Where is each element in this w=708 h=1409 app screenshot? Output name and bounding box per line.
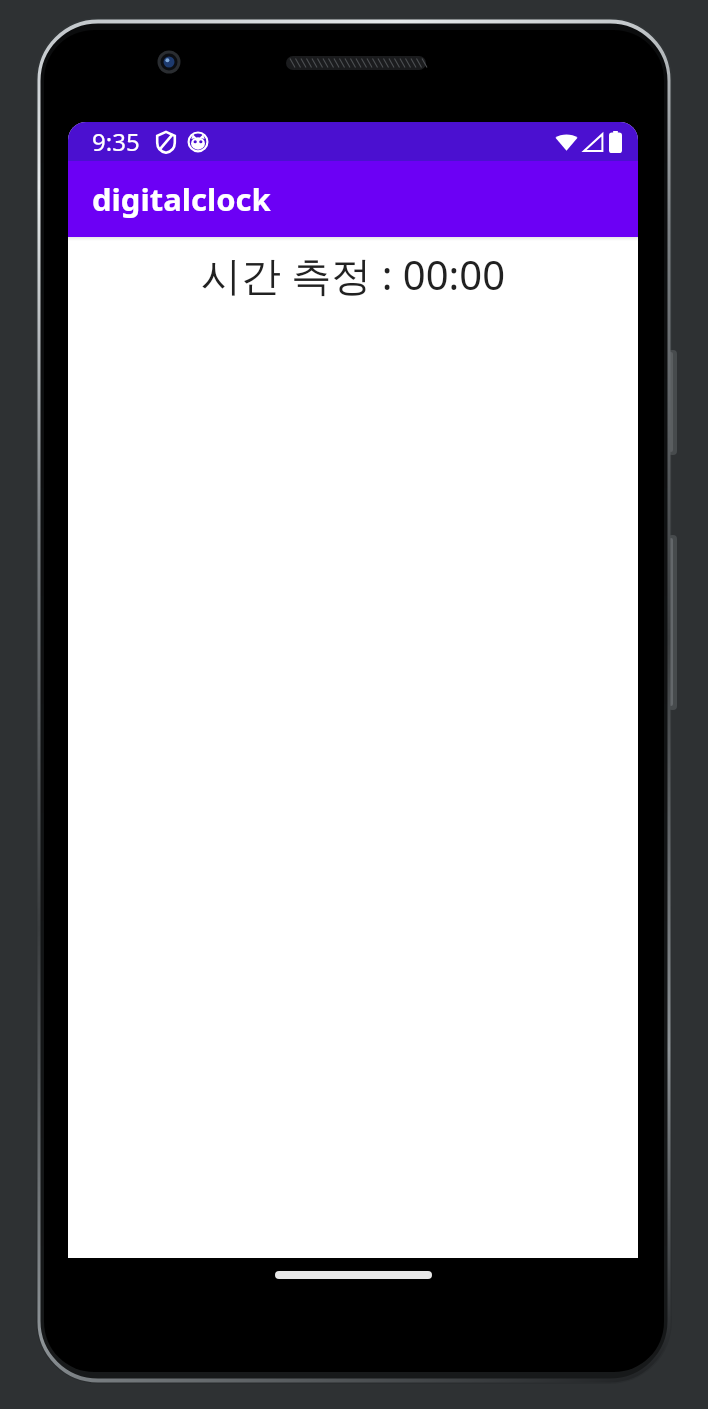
staticText: 9:35 <box>92 125 140 158</box>
button[interactable]: 시간 측정 : 00:00 <box>68 247 638 302</box>
staticText: digitalclock <box>92 178 271 220</box>
